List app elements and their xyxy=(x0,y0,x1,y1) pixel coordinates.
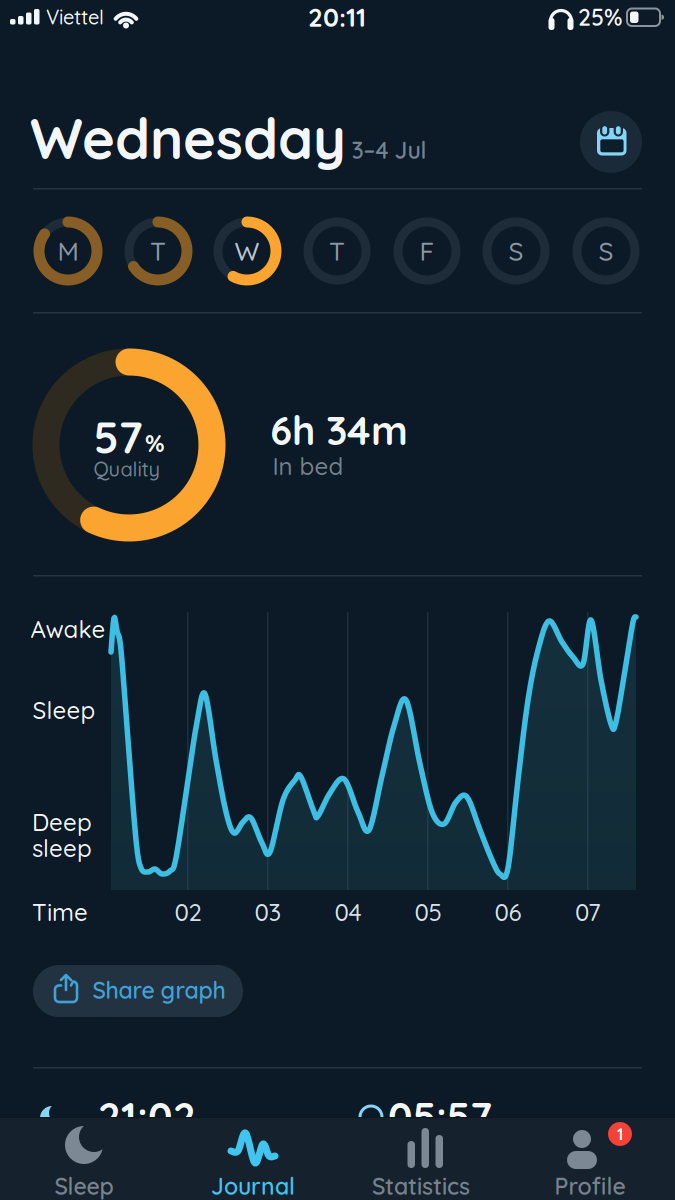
staticText: Time xyxy=(32,897,88,927)
button[interactable]: Statistics xyxy=(351,1117,491,1199)
button[interactable]: T xyxy=(302,216,371,285)
staticText: 1 xyxy=(617,1124,623,1144)
button[interactable]: Journal xyxy=(183,1117,323,1199)
staticText: % xyxy=(145,428,165,458)
staticText: 04 xyxy=(334,897,361,927)
button[interactable]: S xyxy=(481,216,550,285)
staticText: 25% xyxy=(578,3,622,31)
staticText: sleep xyxy=(32,833,92,863)
staticText: Wednesday xyxy=(30,103,346,173)
staticText: 21:02 xyxy=(98,1091,196,1141)
staticText: 05 xyxy=(414,897,441,927)
staticText: 20:11 xyxy=(308,1,366,33)
staticText: Quality xyxy=(93,456,160,481)
staticText: S xyxy=(508,235,523,267)
button[interactable]: Share graph xyxy=(33,965,243,1017)
staticText: W xyxy=(234,235,259,267)
staticText: Viettel xyxy=(46,4,104,29)
staticText: 02 xyxy=(174,897,201,927)
button[interactable]: 1 xyxy=(520,1117,660,1199)
staticText: F xyxy=(419,235,434,267)
button[interactable]: T xyxy=(123,216,192,285)
staticText: 06 xyxy=(494,897,521,927)
staticText: Profile xyxy=(554,1172,625,1200)
staticText: 07 xyxy=(575,897,601,927)
staticText: 03 xyxy=(254,897,281,927)
staticText: Sleep xyxy=(54,1172,113,1200)
button[interactable]: S xyxy=(571,216,640,285)
staticText: In bed xyxy=(272,451,343,481)
staticText: Sleep xyxy=(32,695,95,725)
staticText: Journal xyxy=(211,1172,295,1200)
staticText: Awake xyxy=(30,614,105,644)
button[interactable]: F xyxy=(392,216,461,285)
staticText: 6h 34m xyxy=(270,405,408,455)
staticText: Share graph xyxy=(92,976,225,1004)
staticText: S xyxy=(598,235,613,267)
staticText: 05:57 xyxy=(388,1091,492,1141)
staticText: 57 xyxy=(93,409,142,464)
staticText: M xyxy=(57,235,78,267)
button[interactable]: M xyxy=(33,216,102,285)
staticText: T xyxy=(329,235,345,267)
button[interactable]: Sleep xyxy=(14,1117,154,1199)
staticText: T xyxy=(150,235,166,267)
button[interactable] xyxy=(580,111,642,173)
staticText: Statistics xyxy=(372,1172,470,1200)
staticText: Deep xyxy=(32,807,92,837)
button[interactable]: W xyxy=(212,216,281,285)
staticText: 3–4 Jul xyxy=(351,136,426,164)
